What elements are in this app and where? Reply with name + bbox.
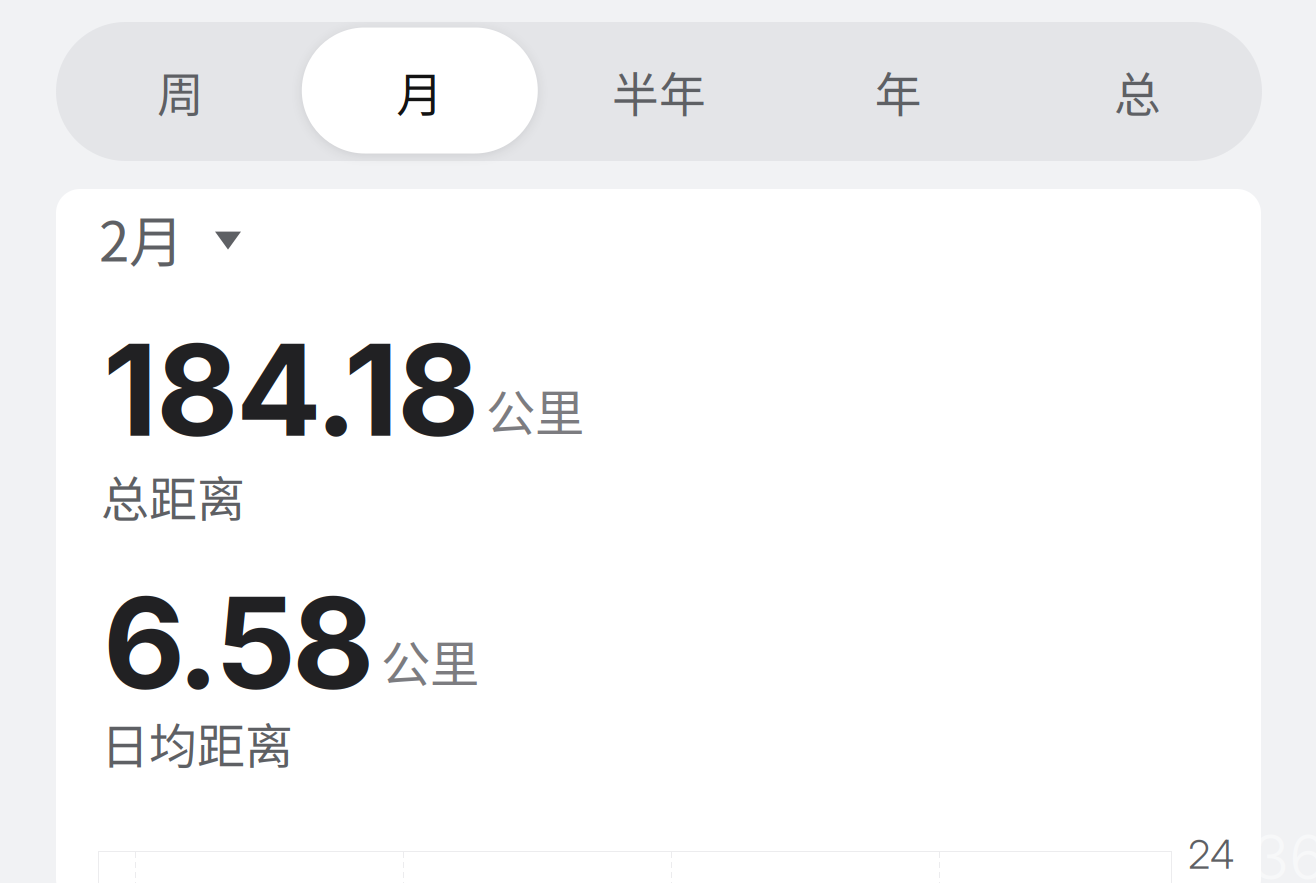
button[interactable]: 月 — [300, 22, 539, 161]
staticText: 2月 — [99, 198, 184, 277]
button[interactable]: 半年 — [539, 22, 779, 161]
staticText: 36 — [1252, 820, 1316, 883]
staticText: 日均距离 — [101, 708, 293, 777]
staticText: 周 — [157, 58, 204, 125]
staticText: 年 — [875, 58, 922, 125]
staticText: 总 — [1114, 58, 1161, 125]
staticText: 半年 — [612, 58, 706, 125]
button[interactable]: 年 — [779, 22, 1018, 161]
staticText: 24 — [1188, 830, 1234, 878]
staticText: 公里 — [381, 625, 479, 696]
button[interactable]: 周 — [61, 22, 300, 161]
staticText: 总距离 — [101, 461, 245, 530]
button[interactable]: 总 — [1018, 22, 1257, 161]
staticText: 6.58 — [103, 566, 374, 719]
staticText: 公里 — [486, 374, 584, 445]
staticText: 184.18 — [103, 313, 479, 466]
button[interactable]: 2月 — [85, 188, 255, 287]
staticText: 月 — [396, 58, 443, 125]
